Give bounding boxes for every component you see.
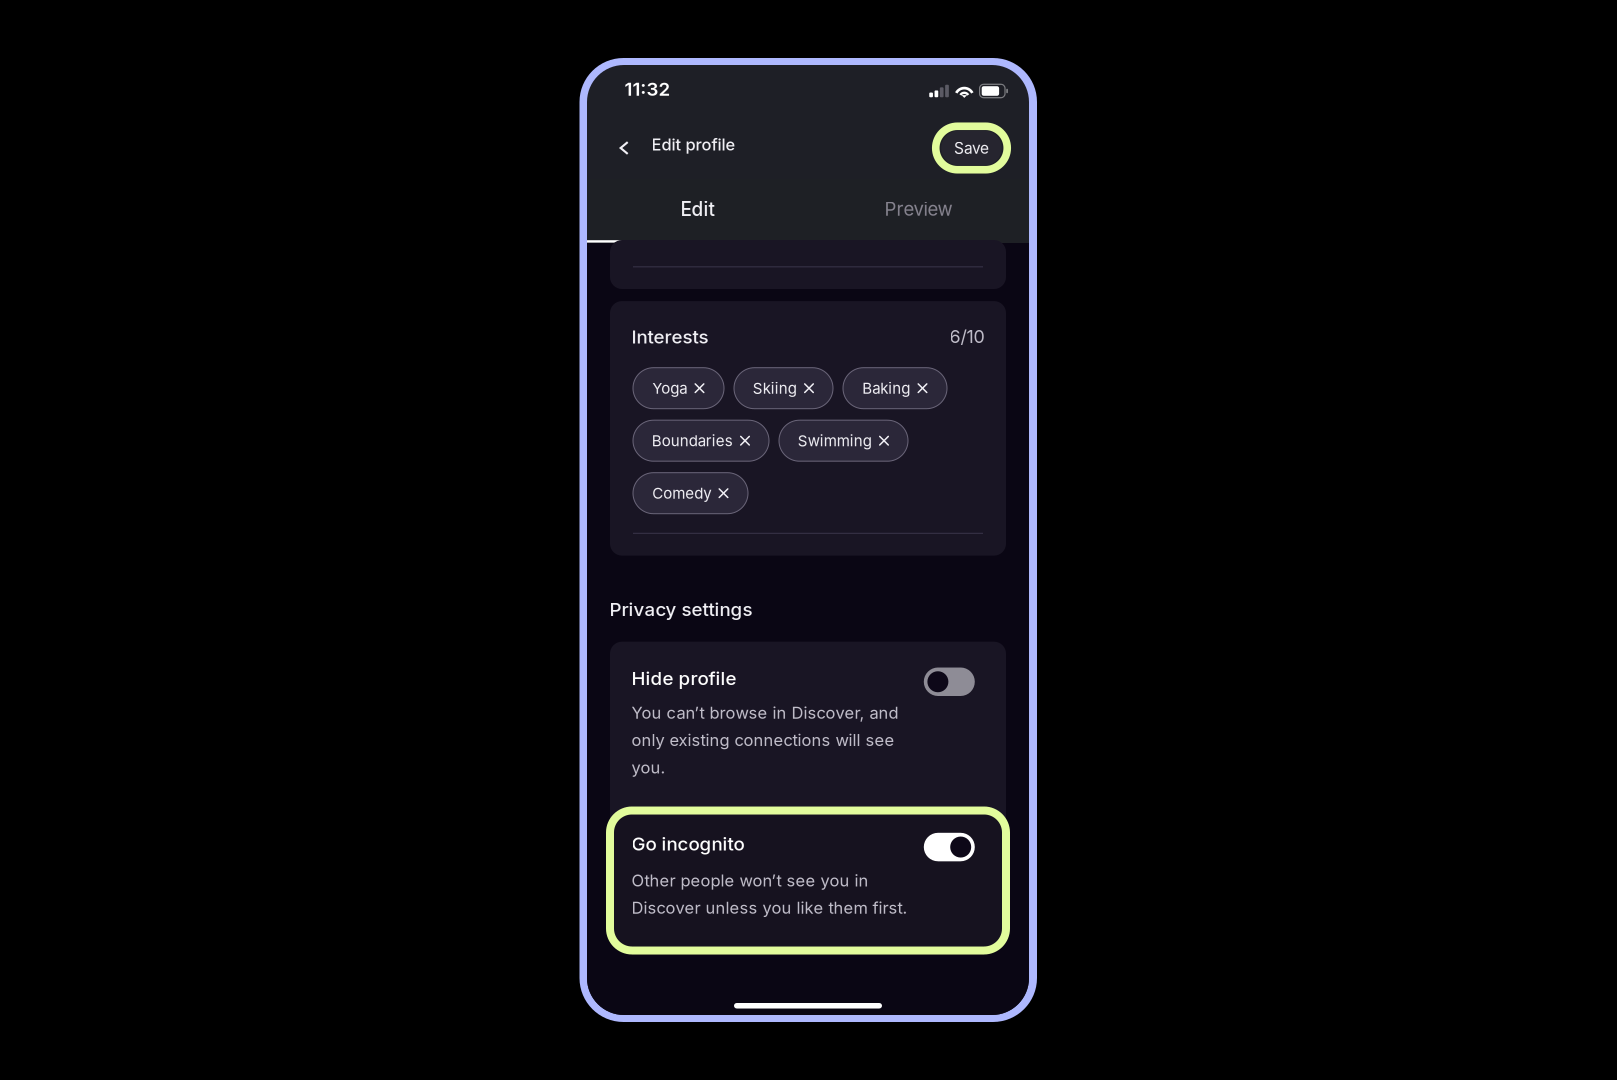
staticText: Edit profile — [651, 135, 735, 154]
button[interactable]: Go incognito — [610, 810, 1006, 950]
staticText: You can’t browse in Discover, and — [631, 703, 898, 723]
staticText: Boundaries — [652, 432, 733, 450]
button[interactable]: Boundaries — [633, 420, 769, 461]
staticText: 11:32 — [624, 78, 670, 100]
button[interactable]: Save — [932, 122, 1011, 174]
staticText: Baking — [862, 379, 910, 397]
staticText: Hide profile — [631, 667, 736, 690]
staticText: Edit — [680, 197, 714, 220]
staticText: Preview — [884, 198, 952, 220]
button[interactable]: Preview — [808, 198, 1029, 220]
button[interactable]: Skiing — [734, 368, 833, 409]
staticText: Discover unless you like them first. — [631, 898, 907, 918]
staticText: Interests — [631, 325, 708, 348]
staticText: 6/10 — [949, 326, 984, 347]
staticText: only existing connections will see — [631, 730, 894, 750]
staticText: Swimming — [798, 432, 872, 450]
staticText: Save — [954, 139, 989, 157]
button[interactable]: Yoga — [633, 368, 724, 409]
button[interactable]: Back — [619, 126, 643, 170]
staticText: Comedy — [652, 484, 711, 502]
staticText: Other people won’t see you in — [631, 870, 868, 890]
button[interactable]: Hide profile — [610, 642, 1006, 810]
staticText: Yoga — [652, 379, 687, 397]
button[interactable]: Comedy — [633, 473, 748, 514]
button[interactable]: Swimming — [779, 420, 908, 461]
staticText: Skiing — [753, 379, 797, 397]
button[interactable]: Edit — [587, 198, 808, 220]
button[interactable]: Baking — [843, 368, 947, 409]
staticText: you. — [631, 757, 665, 777]
staticText: Privacy settings — [609, 598, 752, 621]
staticText: Go incognito — [631, 832, 744, 855]
